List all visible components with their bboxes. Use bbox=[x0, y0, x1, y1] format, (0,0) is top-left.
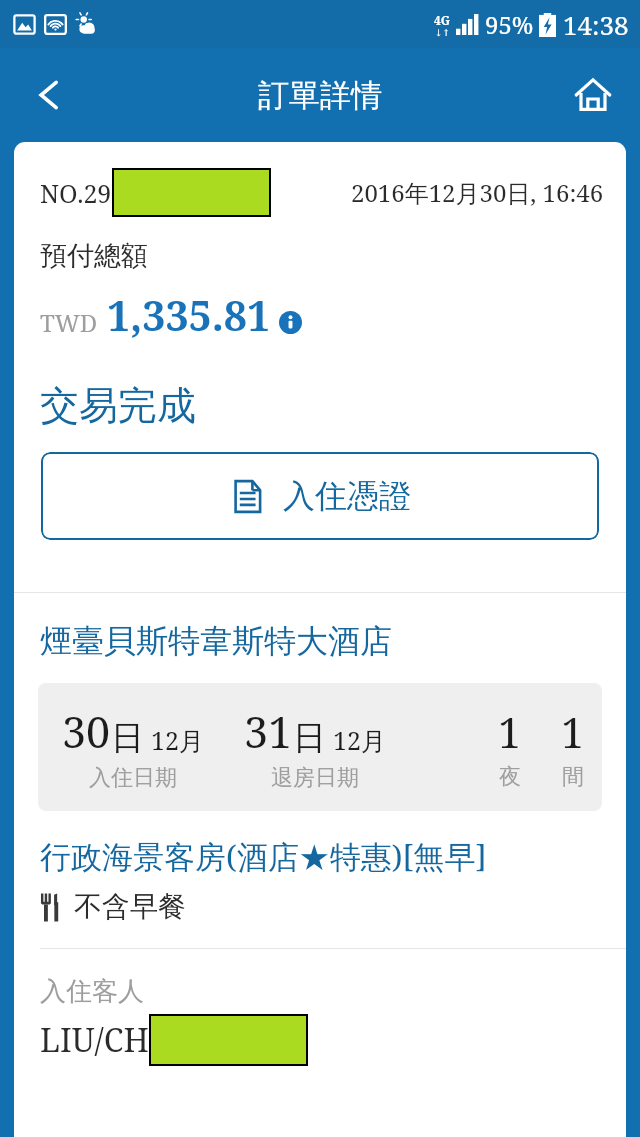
staticText: 2016年12月30日, 16:46 bbox=[351, 176, 604, 209]
button[interactable]: Home bbox=[564, 66, 622, 124]
button[interactable]: Back bbox=[20, 66, 78, 124]
button[interactable]: 入住憑證 bbox=[41, 452, 599, 540]
staticText: 交易完成 bbox=[40, 381, 196, 430]
button[interactable]: Price info bbox=[279, 311, 302, 334]
button[interactable]: 行政海景客房(酒店★特惠)[無早] bbox=[40, 835, 487, 877]
staticText: 14:38 bbox=[563, 7, 629, 42]
staticText: 入住日期 bbox=[89, 764, 177, 792]
staticText: 入住客人 bbox=[40, 975, 144, 1008]
staticText: ↓↑ bbox=[435, 28, 451, 38]
staticText: 1 bbox=[498, 704, 521, 760]
staticText: 1 bbox=[561, 704, 584, 760]
staticText: 4G bbox=[434, 12, 451, 28]
staticText: 訂單詳情 bbox=[258, 76, 382, 115]
staticText: 30 bbox=[62, 702, 111, 761]
staticText: 12月 bbox=[151, 723, 204, 757]
staticText: 退房日期 bbox=[271, 764, 359, 792]
staticText: 12月 bbox=[333, 723, 386, 757]
staticText: 1,335.81 bbox=[107, 287, 271, 343]
staticText: 不含早餐 bbox=[74, 889, 186, 924]
staticText: NO.29 bbox=[40, 176, 112, 210]
staticText: 入住憑證 bbox=[283, 476, 411, 516]
staticText: LIU/CH bbox=[40, 1018, 149, 1062]
staticText: 日 bbox=[111, 717, 144, 759]
staticText: 95% bbox=[485, 8, 534, 41]
staticText: 日 bbox=[293, 717, 326, 759]
staticText: 夜 bbox=[499, 763, 521, 791]
staticText: 31 bbox=[244, 702, 293, 761]
staticText: 預付總額 bbox=[40, 239, 148, 273]
staticText: TWD bbox=[40, 306, 98, 339]
staticText: 間 bbox=[562, 763, 584, 791]
button[interactable]: 煙臺貝斯特韋斯特大酒店 bbox=[40, 621, 392, 661]
